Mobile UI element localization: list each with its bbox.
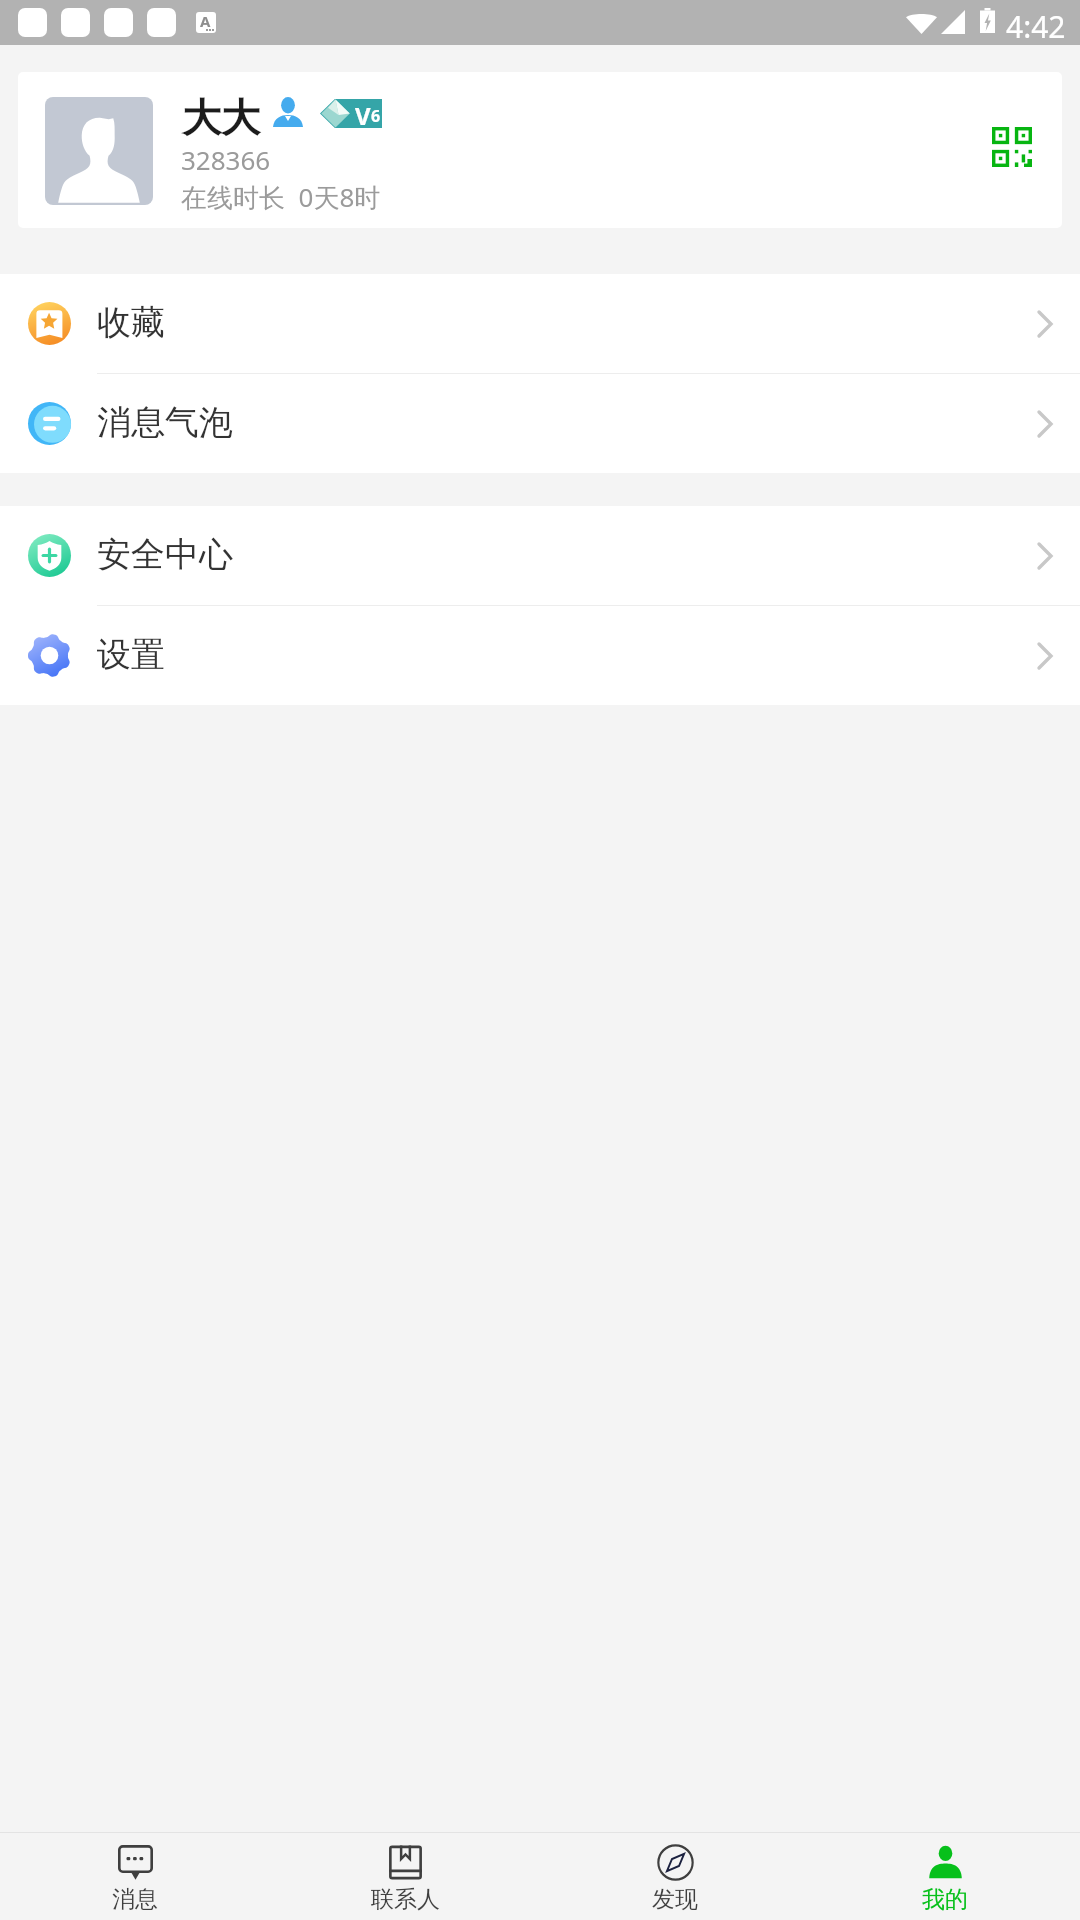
staticText: 消息 xyxy=(112,1885,158,1914)
button[interactable]: 消息气泡 xyxy=(0,374,1080,473)
staticText: 我的 xyxy=(922,1885,968,1914)
staticText: V xyxy=(355,99,371,128)
staticText: A xyxy=(200,12,211,31)
button[interactable]: 发现 xyxy=(540,1833,810,1920)
staticText: 发现 xyxy=(652,1885,698,1914)
staticText: 6 xyxy=(371,105,381,127)
button[interactable]: 消息 xyxy=(0,1833,270,1920)
staticText: 消息气泡 xyxy=(97,401,233,444)
button[interactable]: Scan QR code xyxy=(974,109,1050,185)
button[interactable]: 安全中心 xyxy=(0,506,1080,605)
staticText: 安全中心 xyxy=(97,533,233,576)
staticText: 在线时长 0天8时 xyxy=(181,179,381,215)
button[interactable]: 设置 xyxy=(0,606,1080,705)
staticText: 大大 xyxy=(182,93,260,142)
button[interactable]: 我的 xyxy=(810,1833,1080,1920)
staticText: 收藏 xyxy=(97,301,165,344)
staticText: 联系人 xyxy=(371,1885,440,1914)
button[interactable]: 大大 xyxy=(18,72,1062,228)
button[interactable]: 联系人 xyxy=(270,1833,540,1920)
staticText: 4:42 xyxy=(1006,6,1066,47)
button[interactable]: 收藏 xyxy=(0,274,1080,373)
staticText: 设置 xyxy=(97,633,165,676)
staticText: 328366 xyxy=(181,142,271,177)
